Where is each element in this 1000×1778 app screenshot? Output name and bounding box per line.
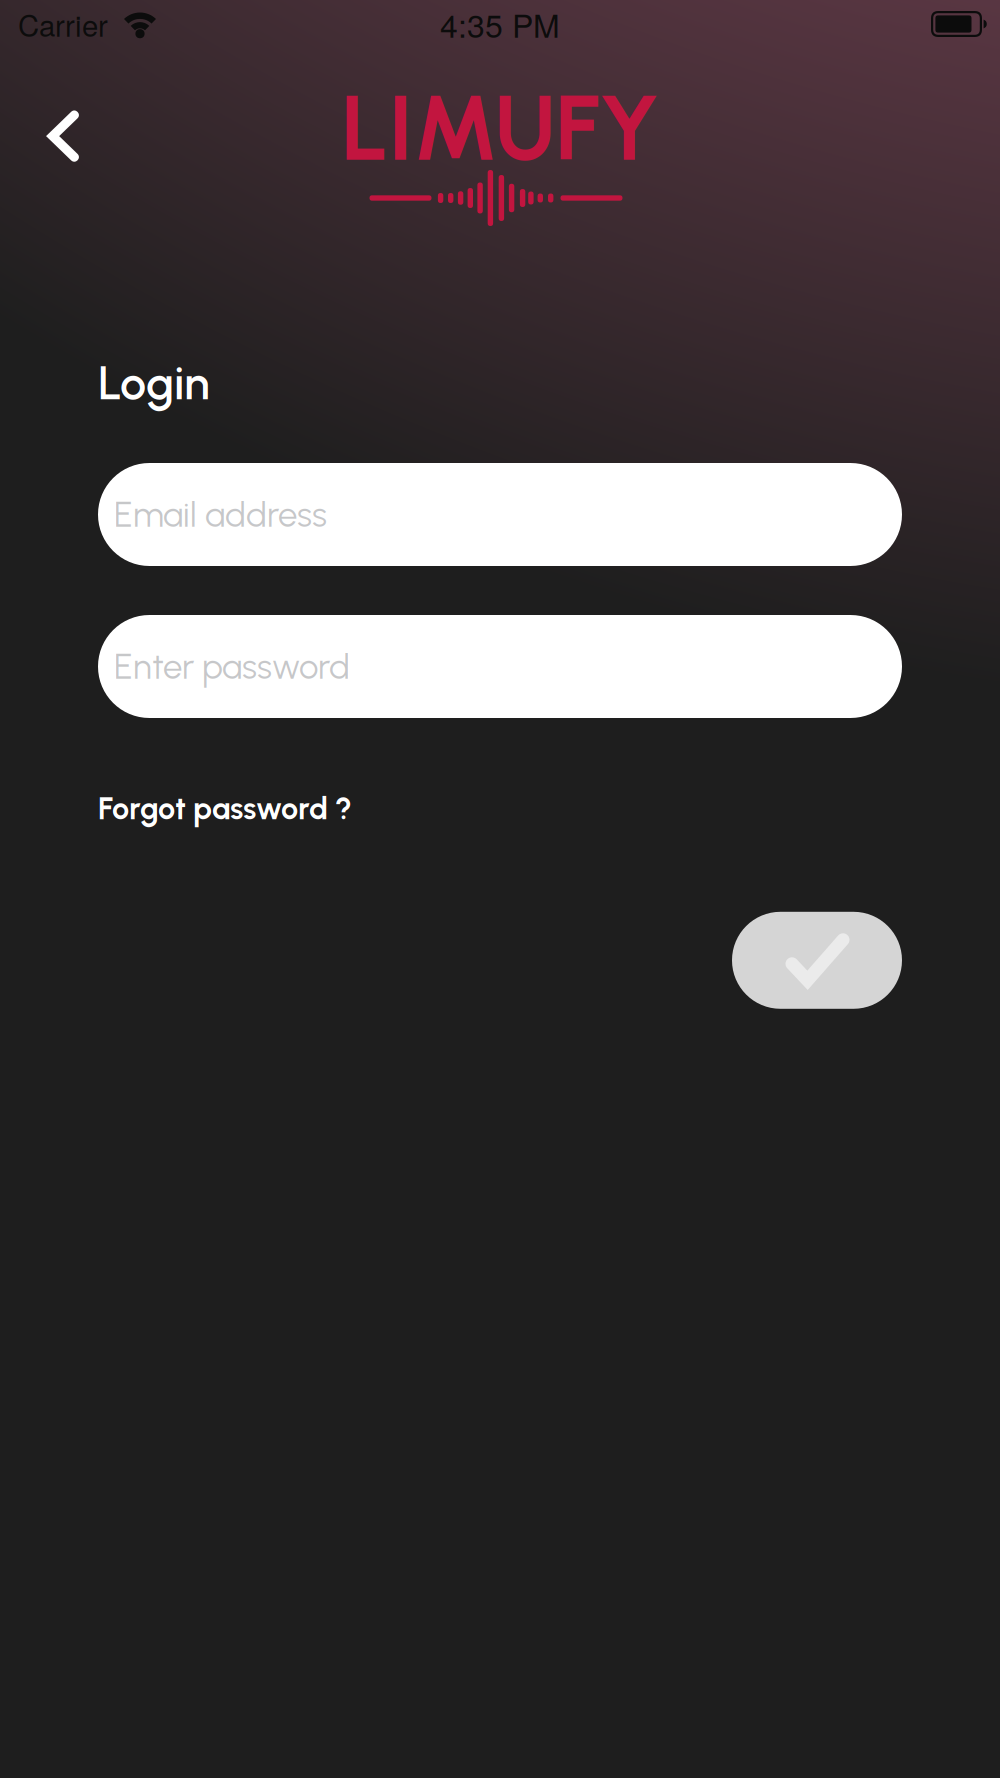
- button[interactable]: Back: [0, 91, 105, 218]
- staticText: Login: [98, 355, 210, 411]
- button[interactable]: Submit: [732, 912, 902, 1009]
- button[interactable]: Enter password: [98, 615, 902, 718]
- staticText: Carrier: [18, 3, 108, 45]
- staticText: 4:35 PM: [440, 1, 560, 47]
- button[interactable]: Forgot password ?: [98, 790, 352, 827]
- staticText: Email address: [114, 494, 327, 535]
- button[interactable]: Email address: [98, 463, 902, 566]
- staticText: Forgot password ?: [98, 790, 352, 827]
- staticText: Enter password: [114, 646, 350, 687]
- staticText: LIMUFY: [341, 74, 659, 182]
